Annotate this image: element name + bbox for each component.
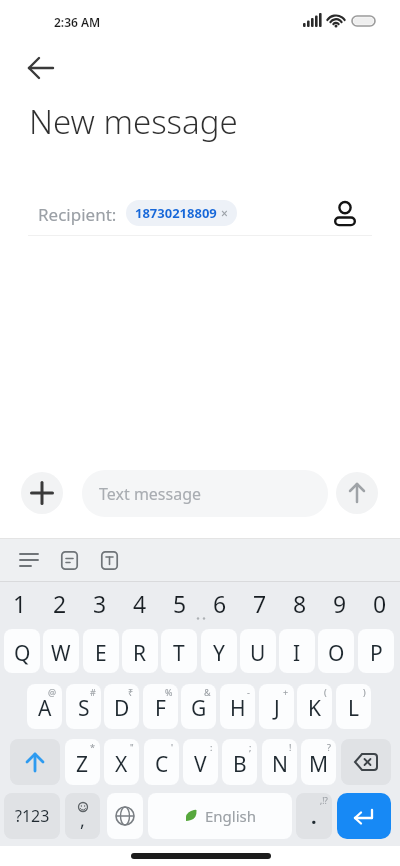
staticText: 2:36 AM — [54, 14, 101, 30]
button[interactable]: Q — [4, 629, 40, 673]
button[interactable]: ?123 — [4, 793, 60, 839]
staticText: Q — [14, 639, 31, 668]
button[interactable]: 5 — [160, 588, 200, 618]
button[interactable] — [107, 793, 143, 839]
staticText: G — [191, 694, 207, 723]
button[interactable]: Z — [65, 739, 100, 785]
staticText: @ — [48, 686, 57, 698]
button[interactable]: N — [262, 739, 297, 785]
staticText: English — [205, 806, 257, 826]
staticText: C — [155, 750, 169, 779]
staticText: ' — [171, 741, 174, 753]
button[interactable]: J — [259, 684, 294, 729]
staticText: " — [130, 741, 134, 753]
button[interactable]: 6 — [200, 588, 240, 618]
button[interactable]: R — [122, 629, 158, 673]
staticText: E — [95, 639, 107, 668]
button[interactable]: , — [65, 793, 100, 839]
staticText: X — [115, 750, 128, 779]
button[interactable] — [336, 472, 378, 514]
button[interactable]: S — [66, 684, 101, 729]
staticText: 3 — [93, 588, 107, 618]
staticText: & — [204, 686, 211, 698]
button[interactable]: 18730218809 — [126, 200, 237, 226]
button[interactable] — [10, 546, 48, 574]
staticText: . — [311, 803, 317, 830]
button[interactable] — [10, 739, 60, 785]
button[interactable]: I — [279, 629, 315, 673]
staticText: 0 — [373, 588, 387, 618]
button[interactable]: 9 — [320, 588, 360, 618]
button[interactable]: 7 — [240, 588, 280, 618]
button[interactable] — [21, 472, 63, 514]
staticText: Recipient: — [38, 203, 117, 226]
staticText: New message — [29, 99, 238, 144]
staticText: H — [230, 694, 246, 723]
button[interactable]: 8 — [280, 588, 320, 618]
staticText: A — [38, 694, 52, 723]
staticText: K — [308, 694, 321, 723]
staticText: , — [80, 808, 85, 833]
button[interactable]: K — [297, 684, 332, 729]
button[interactable] — [91, 546, 127, 574]
staticText: J — [274, 694, 280, 723]
staticText: Y — [213, 639, 225, 668]
staticText: # — [90, 686, 96, 698]
button[interactable]: 1 — [0, 588, 40, 618]
staticText: 6 — [213, 588, 227, 618]
staticText: Z — [76, 750, 89, 779]
button[interactable]: Text message — [82, 470, 328, 517]
staticText: 8 — [293, 588, 307, 618]
button[interactable]: V — [183, 739, 218, 785]
button[interactable]: L — [336, 684, 371, 729]
staticText: N — [272, 750, 288, 779]
button[interactable]: D — [104, 684, 139, 729]
staticText: + — [283, 686, 289, 698]
staticText: 5 — [173, 588, 187, 618]
button[interactable]: H — [220, 684, 255, 729]
staticText: × — [221, 205, 228, 221]
button[interactable]: A — [27, 684, 62, 729]
button[interactable]: G — [181, 684, 216, 729]
button[interactable] — [326, 194, 364, 232]
staticText: - — [247, 686, 250, 698]
button[interactable]: W — [43, 629, 79, 673]
button[interactable]: X — [104, 739, 139, 785]
staticText: ( — [324, 686, 327, 698]
button[interactable]: 4 — [120, 588, 160, 618]
button[interactable]: 3 — [80, 588, 120, 618]
staticText: L — [348, 694, 360, 723]
button[interactable]: . — [296, 793, 332, 839]
button[interactable]: Y — [201, 629, 237, 673]
staticText: ) — [363, 686, 366, 698]
staticText: P — [370, 639, 383, 668]
button[interactable]: C — [144, 739, 179, 785]
button[interactable]: English — [148, 793, 292, 839]
button[interactable]: P — [358, 629, 394, 673]
button[interactable]: B — [222, 739, 257, 785]
staticText: F — [155, 694, 166, 723]
staticText: I — [293, 639, 301, 668]
staticText: D — [114, 694, 130, 723]
button[interactable]: U — [240, 629, 276, 673]
button[interactable] — [341, 739, 391, 785]
button[interactable]: F — [143, 684, 178, 729]
button[interactable] — [51, 546, 87, 574]
button[interactable]: 0 — [360, 588, 400, 618]
staticText: ; — [249, 741, 252, 753]
staticText: 4 — [133, 588, 147, 618]
button[interactable]: M — [301, 739, 336, 785]
staticText: ,!? — [320, 795, 328, 806]
staticText: 18730218809 — [135, 204, 217, 222]
button[interactable]: E — [83, 629, 119, 673]
staticText: ! — [289, 741, 292, 753]
staticText: O — [328, 639, 345, 668]
staticText: 1 — [13, 588, 27, 618]
button[interactable] — [18, 46, 64, 90]
button[interactable] — [337, 793, 391, 839]
staticText: M — [309, 750, 329, 779]
button[interactable]: 2 — [40, 588, 80, 618]
button[interactable]: O — [318, 629, 354, 673]
staticText: : — [210, 741, 213, 753]
button[interactable]: T — [161, 629, 197, 673]
